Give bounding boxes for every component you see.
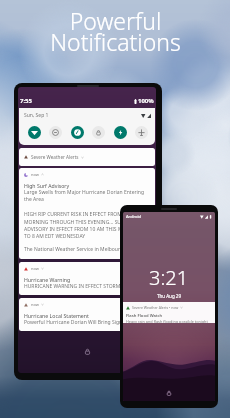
staticText: Thu Aug 29 [157,293,181,299]
staticText: Severe Weather Alerts [31,154,79,160]
button[interactable]: Auto rotate [92,126,105,139]
staticText: HIGH RIP CURRENT RISK IN EFFECT FROM THI… [24,211,150,239]
button[interactable]: Flashlight [71,126,84,139]
staticText: Hurricane Warning [24,276,71,283]
staticText: Hurricane Local Statement [24,312,89,319]
button[interactable]: Wi-Fi [28,126,41,139]
button[interactable]: Battery saver [114,126,127,139]
staticText: Heavy rain and flash flooding possible t… [126,319,212,323]
staticText: 7:55 [20,97,32,105]
staticText: The National Weather Service in Melbourn… [24,246,126,253]
staticText: Severe Weather Alerts • now [132,305,179,310]
button[interactable]: now [19,168,155,259]
staticText: Flash Flood Watch [126,313,163,319]
staticText: Sun, Sep 1 [24,112,49,119]
staticText: Large Swells from Major Hurricane Dorian… [24,189,150,203]
staticText: High Surf Advisory [24,182,70,189]
staticText: Powerful Hurricane Dorian Will Bring Sig… [24,319,137,326]
staticText: Android [126,214,141,219]
staticText: now [31,172,39,177]
button[interactable]: Severe Weather Alerts [19,148,155,166]
button[interactable]: now [19,262,155,295]
staticText: Powerful Notifications [50,5,181,58]
staticText: HURRICANE WARNING IN EFFECT STORM [24,283,121,290]
staticText: now [31,302,39,307]
staticText: now [31,266,39,271]
button[interactable]: Airplane mode [135,126,148,139]
staticText: 100% [138,97,154,105]
staticText: 3:21 [149,264,189,291]
button[interactable]: Severe Weather Alerts • now [123,302,215,323]
button[interactable]: now [19,298,155,331]
button[interactable]: Do not disturb [49,126,62,139]
